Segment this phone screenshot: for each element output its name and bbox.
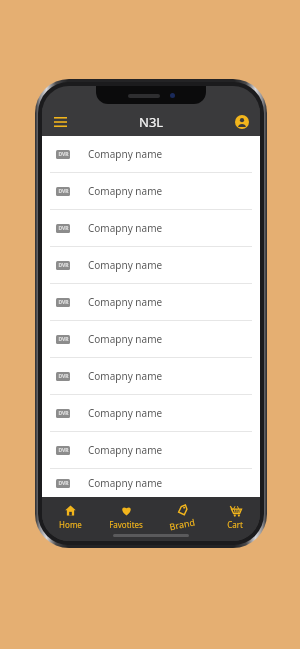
staticText: DVR bbox=[58, 262, 69, 269]
staticText: Comapny name bbox=[88, 184, 163, 198]
staticText: Cart bbox=[227, 519, 243, 530]
staticText: Comapny name bbox=[88, 221, 163, 235]
staticText: DVR bbox=[58, 151, 69, 158]
button[interactable]: DVR bbox=[42, 321, 260, 357]
button[interactable]: Cart bbox=[210, 502, 260, 532]
button[interactable]: DVR bbox=[42, 358, 260, 394]
button[interactable]: Menu bbox=[50, 112, 70, 132]
staticText: DVR bbox=[58, 188, 69, 195]
staticText: Comapny name bbox=[88, 476, 163, 490]
staticText: DVR bbox=[58, 480, 69, 487]
staticText: Comapny name bbox=[88, 369, 163, 383]
button[interactable]: DVR bbox=[42, 247, 260, 283]
staticText: Comapny name bbox=[88, 258, 163, 272]
staticText: Comapny name bbox=[88, 147, 163, 161]
button[interactable]: DVR bbox=[42, 136, 260, 172]
staticText: Favotites bbox=[109, 519, 143, 530]
staticText: DVR bbox=[58, 373, 69, 380]
button[interactable]: DVR bbox=[42, 210, 260, 246]
staticText: DVR bbox=[58, 410, 69, 417]
staticText: N3L bbox=[139, 113, 164, 131]
staticText: Comapny name bbox=[88, 406, 163, 420]
staticText: DVR bbox=[58, 447, 69, 454]
staticText: Brand bbox=[168, 515, 196, 532]
staticText: Comapny name bbox=[88, 332, 163, 346]
staticText: DVR bbox=[58, 299, 69, 306]
staticText: DVR bbox=[58, 336, 69, 343]
button[interactable]: Home bbox=[42, 502, 98, 532]
button[interactable]: Favotites bbox=[98, 502, 154, 532]
button[interactable]: DVR bbox=[42, 395, 260, 431]
staticText: Home bbox=[59, 519, 82, 530]
staticText: DVR bbox=[58, 225, 69, 232]
button[interactable]: Account bbox=[232, 112, 252, 132]
button[interactable]: DVR bbox=[42, 432, 260, 468]
button[interactable]: Brand bbox=[154, 502, 210, 532]
staticText: Comapny name bbox=[88, 295, 163, 309]
staticText: Comapny name bbox=[88, 443, 163, 457]
button[interactable]: DVR bbox=[42, 284, 260, 320]
button[interactable]: DVR bbox=[42, 469, 260, 497]
button[interactable]: DVR bbox=[42, 173, 260, 209]
